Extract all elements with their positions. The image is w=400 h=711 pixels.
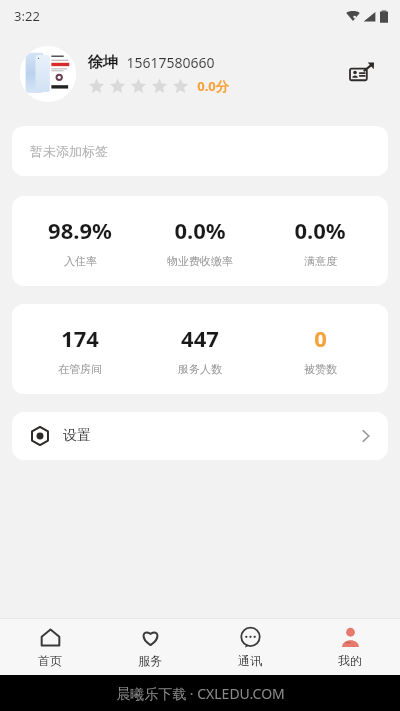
button[interactable]: 447	[140, 323, 260, 376]
staticText: 0	[314, 323, 327, 353]
staticText: 0.0%	[174, 215, 226, 245]
staticText: 0.0%	[294, 215, 346, 245]
button[interactable]: 我的	[300, 619, 400, 675]
staticText: 447	[181, 323, 219, 353]
staticText: 暂未添加标签	[30, 143, 108, 159]
staticText: 3:22	[14, 7, 40, 25]
button[interactable]: 98.9%	[12, 196, 388, 286]
button[interactable]: Share contact card	[342, 54, 382, 94]
button[interactable]: 首页	[0, 619, 100, 675]
button[interactable]: Avatar	[20, 46, 76, 102]
staticText: 首页	[38, 653, 62, 668]
button[interactable]: 暂未添加标签	[12, 126, 388, 176]
staticText: 服务人数	[178, 362, 222, 376]
button[interactable]: 0.0%	[140, 215, 260, 268]
staticText: 174	[61, 323, 99, 353]
staticText: 15617580660	[126, 53, 215, 72]
staticText: 服务	[138, 653, 162, 668]
staticText: 徐坤	[88, 53, 118, 72]
button[interactable]: 0.0%	[260, 215, 380, 268]
button[interactable]: 通讯	[200, 619, 300, 675]
staticText: 0.0分	[197, 77, 229, 95]
button[interactable]: 98.9%	[20, 215, 140, 268]
staticText: 被赞数	[304, 362, 337, 376]
staticText: 我的	[338, 653, 362, 668]
staticText: 物业费收缴率	[167, 254, 233, 268]
button[interactable]: 174	[12, 304, 388, 394]
staticText: 通讯	[238, 653, 262, 668]
button[interactable]: Avatar	[0, 32, 400, 116]
staticText: 晨曦乐下载 · CXLEDU.COM	[116, 684, 285, 703]
button[interactable]: 174	[20, 323, 140, 376]
button[interactable]: 0	[260, 323, 380, 376]
staticText: 满意度	[304, 254, 337, 268]
button[interactable]: 服务	[100, 619, 200, 675]
staticText: 设置	[63, 427, 91, 445]
button[interactable]: 设置	[12, 412, 388, 460]
staticText: 98.9%	[48, 215, 112, 245]
staticText: 在管房间	[58, 362, 102, 376]
staticText: 入住率	[64, 254, 97, 268]
